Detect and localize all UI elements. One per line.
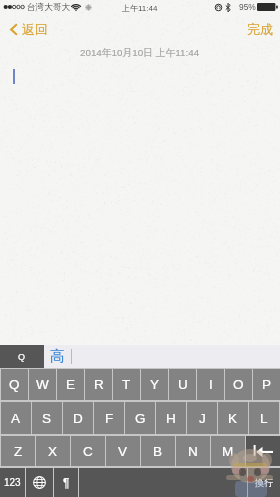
button[interactable]: J (187, 402, 217, 434)
staticText: F (105, 411, 114, 426)
button[interactable]: D (63, 402, 93, 434)
staticText: P (262, 377, 272, 392)
button[interactable]: E (57, 369, 84, 400)
button[interactable]: Y (141, 369, 168, 400)
staticText: S (42, 411, 52, 426)
button[interactable]: K (218, 402, 248, 434)
button[interactable]: O (225, 369, 252, 400)
button[interactable]: ¶ (54, 468, 78, 497)
staticText: 2014年10月10日 上午11:44 (80, 47, 200, 59)
staticText: J (199, 411, 206, 426)
staticText: 123 (4, 477, 21, 488)
staticText: Q (18, 352, 26, 362)
button[interactable]: Space (79, 468, 247, 497)
staticText: Q (9, 377, 20, 392)
staticText: 完成 (247, 21, 273, 37)
staticText: M (222, 444, 234, 459)
button[interactable]: F (94, 402, 124, 434)
staticText: L (260, 411, 268, 426)
staticText: 95% (239, 2, 256, 11)
button[interactable]: Z (1, 436, 35, 466)
staticText: V (118, 444, 128, 459)
button[interactable]: L (249, 402, 279, 434)
staticText: G (135, 411, 146, 426)
staticText: W (36, 377, 49, 392)
staticText: I (209, 377, 213, 392)
staticText: R (94, 377, 104, 392)
staticText: O (233, 377, 244, 392)
staticText: N (188, 444, 198, 459)
button[interactable]: S (32, 402, 62, 434)
staticText: A (11, 411, 21, 426)
staticText: H (166, 411, 176, 426)
staticText: T (122, 377, 131, 392)
button[interactable]: M (211, 436, 245, 466)
staticText: ¶ (63, 476, 70, 489)
button[interactable]: Q (1, 369, 28, 400)
button[interactable]: 完成 (237, 16, 280, 42)
staticText: U (178, 377, 188, 392)
staticText: C (83, 444, 93, 459)
staticText: 換行 (255, 477, 273, 488)
staticText: D (73, 411, 83, 426)
staticText: 返回 (22, 21, 48, 37)
button[interactable]: X (36, 436, 70, 466)
button[interactable]: C (71, 436, 105, 466)
button[interactable]: P (253, 369, 280, 400)
staticText: 台湾大哥大 (27, 2, 70, 13)
staticText: B (153, 444, 163, 459)
button[interactable]: W (29, 369, 56, 400)
staticText: Z (14, 444, 23, 459)
staticText: 高 (50, 347, 65, 366)
button[interactable]: A (1, 402, 31, 434)
button[interactable]: Switch keyboard (26, 468, 53, 497)
button[interactable]: V (106, 436, 140, 466)
button[interactable]: H (156, 402, 186, 434)
button[interactable]: N (176, 436, 210, 466)
button[interactable]: B (141, 436, 175, 466)
staticText: Y (150, 377, 160, 392)
button[interactable]: 高 (44, 345, 71, 368)
staticText: 上午11:44 (122, 3, 158, 13)
staticText: E (66, 377, 76, 392)
button[interactable]: G (125, 402, 155, 434)
button[interactable]: 123 (0, 468, 25, 497)
staticText: K (228, 411, 238, 426)
button[interactable]: Q (0, 345, 44, 368)
button[interactable]: Backspace (246, 436, 280, 466)
button[interactable]: T (113, 369, 140, 400)
button[interactable]: R (85, 369, 112, 400)
button[interactable]: 換行 (248, 468, 280, 497)
button[interactable]: 返回 (0, 16, 58, 42)
staticText: X (48, 444, 58, 459)
button[interactable]: U (169, 369, 196, 400)
button[interactable]: I (197, 369, 224, 400)
